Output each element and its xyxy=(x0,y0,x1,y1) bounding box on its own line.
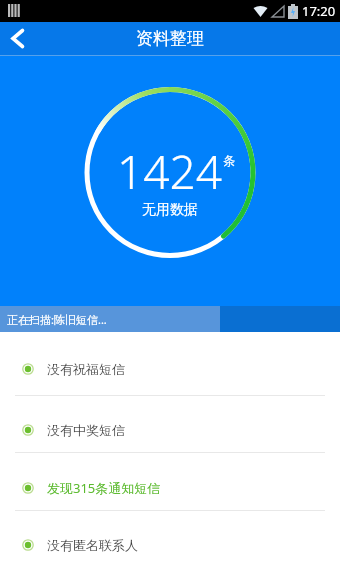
staticText: 发现315条通知短信 xyxy=(47,479,161,497)
staticText: 1424 xyxy=(117,140,223,203)
button[interactable]: 发现315条通知短信 xyxy=(0,460,340,516)
staticText: 没有祝福短信 xyxy=(47,361,125,377)
button[interactable]: 没有中奖短信 xyxy=(0,402,340,458)
staticText: 没有匿名联系人 xyxy=(47,537,138,553)
staticText: 无用数据 xyxy=(142,201,198,219)
button[interactable] xyxy=(0,22,34,55)
staticText: 没有中奖短信 xyxy=(47,422,125,438)
staticText: 资料整理 xyxy=(136,28,204,49)
button[interactable]: 没有祝福短信 xyxy=(0,341,340,397)
staticText: 17:20 xyxy=(302,2,336,20)
staticText: 正在扫描:陈旧短信... xyxy=(7,312,107,327)
button[interactable]: 没有匿名联系人 xyxy=(0,517,340,566)
staticText: 条 xyxy=(223,153,235,168)
